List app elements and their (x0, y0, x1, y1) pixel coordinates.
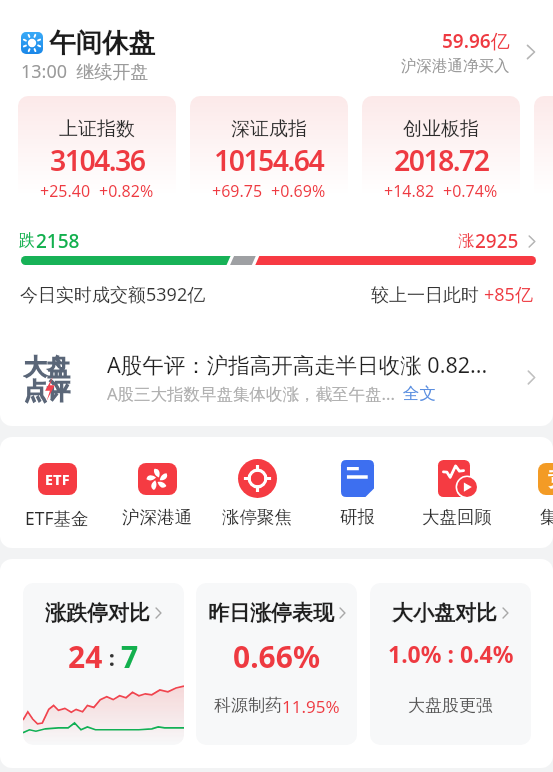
staticText: 沪深港通 (122, 506, 192, 528)
staticText: 科源制药 (214, 695, 282, 716)
staticText: 竞 (548, 467, 553, 492)
staticText: +25.40 (40, 180, 91, 202)
staticText: 大小盘对比 (392, 600, 497, 626)
staticText: 上证指数 (59, 117, 135, 141)
staticText: 13:00 继续开盘 (21, 59, 149, 84)
staticText: 1.0% : 0.4% (388, 638, 514, 669)
staticText: 全文 (403, 383, 436, 404)
staticText: 7 (121, 636, 139, 677)
staticText: 11.95% (282, 695, 340, 718)
button[interactable]: 大小盘对比 (370, 583, 531, 745)
staticText: 研报 (340, 506, 375, 528)
staticText: +14.82 (384, 180, 435, 202)
staticText: 较上一日此时 (371, 282, 484, 307)
staticText: ETF (45, 470, 70, 489)
staticText: 午间休盘 (49, 26, 155, 59)
button[interactable]: 昨日涨停表现 (196, 583, 357, 745)
staticText: 涨跌停对比 (45, 600, 150, 626)
staticText: +0.69% (271, 180, 326, 202)
staticText: : (103, 642, 121, 672)
staticText: 评 (47, 377, 70, 406)
staticText: +69.75 (212, 180, 263, 202)
staticText: 今日实时成交额5392亿 (20, 282, 206, 307)
staticText: 0.66% (233, 636, 320, 677)
staticText: 2018.72 (394, 141, 489, 180)
staticText: A股午评：沪指高开高走半日收涨 0.82... (107, 350, 488, 379)
button[interactable]: 涨跌停对比 (23, 583, 184, 745)
staticText: 3104.36 (50, 141, 145, 180)
button[interactable]: 上证指数 (18, 96, 176, 212)
staticText: 10154.64 (214, 141, 324, 180)
staticText: 59.96亿 (442, 28, 510, 54)
button[interactable]: 竞 (507, 437, 553, 528)
staticText: 沪深港通净买入 (401, 56, 510, 76)
staticText: 大盘股更强 (408, 695, 493, 716)
staticText: 昨日涨停表现 (208, 600, 334, 626)
staticText: 创业板指 (403, 117, 479, 141)
staticText: 2158 (36, 228, 80, 254)
staticText: 涨 (458, 231, 474, 251)
button[interactable]: ETF (7, 437, 107, 530)
button[interactable]: 研报 (307, 437, 407, 528)
staticText: +85亿 (484, 282, 533, 307)
button[interactable]: 大 (0, 341, 553, 413)
button[interactable]: 深证成指 (190, 96, 348, 212)
staticText: 深证成指 (231, 117, 307, 141)
staticText: 盘 (47, 353, 70, 382)
button[interactable]: 沪深港通 (107, 437, 207, 528)
staticText: 点 (24, 377, 47, 406)
staticText: 跌 (19, 231, 35, 251)
button[interactable]: 创业板指 (362, 96, 520, 212)
staticText: 大盘回顾 (422, 506, 492, 528)
staticText: 大 (24, 353, 47, 382)
staticText: +0.82% (99, 180, 154, 202)
staticText: 涨停聚焦 (222, 506, 292, 528)
button[interactable]: 涨停聚焦 (207, 437, 307, 528)
staticText: 集合 (540, 506, 553, 528)
staticText: 2925 (475, 228, 519, 254)
staticText: ETF基金 (25, 506, 89, 530)
staticText: +0.74% (443, 180, 498, 202)
button[interactable]: 大盘回顾 (407, 437, 507, 528)
staticText: 24 (68, 636, 103, 677)
staticText: A股三大指数早盘集体收涨，截至午盘... (107, 382, 395, 405)
